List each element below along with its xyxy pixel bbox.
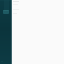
button[interactable]: Teal panel bbox=[0, 0, 12, 64]
button[interactable]: Card bbox=[3, 10, 9, 14]
